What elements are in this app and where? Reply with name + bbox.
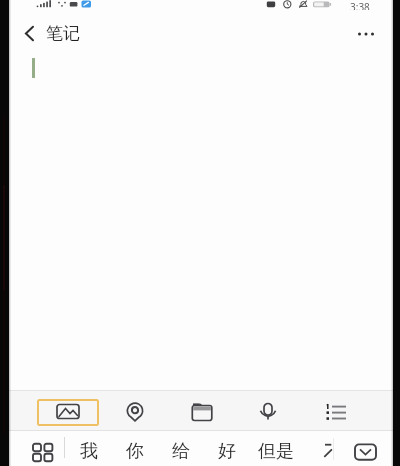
staticText: 但是 <box>258 440 294 463</box>
button[interactable]: 好 <box>209 437 245 465</box>
button[interactable]: 给 <box>163 437 199 465</box>
button[interactable] <box>246 392 290 428</box>
button[interactable] <box>16 23 42 45</box>
button[interactable] <box>351 440 380 464</box>
staticText: 给 <box>172 440 190 463</box>
button[interactable]: 你 <box>117 437 153 465</box>
staticText: 笔记 <box>46 23 80 44</box>
button[interactable] <box>314 392 358 428</box>
staticText: 你 <box>126 440 144 463</box>
button[interactable] <box>28 439 57 466</box>
button[interactable] <box>113 392 157 428</box>
button[interactable] <box>350 24 380 44</box>
button[interactable]: 我 <box>71 437 107 465</box>
staticText: 我 <box>80 440 98 463</box>
button[interactable] <box>180 392 224 428</box>
button[interactable] <box>46 392 90 428</box>
button[interactable]: 但是 <box>254 437 298 465</box>
button[interactable]: 笔记 <box>46 22 80 45</box>
staticText: 好 <box>218 440 236 463</box>
staticText: 3:38 <box>350 0 370 10</box>
